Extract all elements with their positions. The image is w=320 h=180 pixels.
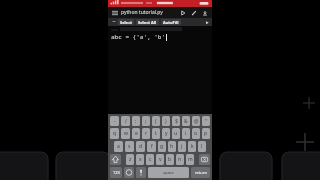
button[interactable]: f xyxy=(147,141,156,152)
staticText: ▸ xyxy=(206,19,209,25)
button[interactable]: : xyxy=(132,116,140,126)
button[interactable]: c xyxy=(146,154,154,165)
staticText: s xyxy=(128,143,131,150)
staticText: e xyxy=(135,130,138,137)
staticText: g xyxy=(160,143,164,150)
button[interactable]: python tutorial.py xyxy=(121,9,179,16)
staticText: o xyxy=(194,130,198,137)
staticText: a xyxy=(117,143,120,150)
button[interactable]: j xyxy=(178,141,186,152)
button[interactable]: u xyxy=(172,128,180,139)
staticText: @ xyxy=(194,118,199,125)
staticText: j xyxy=(181,143,183,150)
button[interactable]: y xyxy=(162,128,170,139)
button[interactable]: t xyxy=(152,128,160,139)
button[interactable]: Select All xyxy=(136,19,159,25)
staticText: return xyxy=(195,170,207,175)
staticText: / xyxy=(125,118,127,125)
staticText: n xyxy=(178,156,182,163)
staticText: python tutorial.py xyxy=(121,9,163,16)
button[interactable]: $ xyxy=(172,116,180,126)
button[interactable]: e xyxy=(132,128,140,139)
button[interactable]: / xyxy=(121,116,130,126)
button[interactable]: a xyxy=(114,141,123,152)
staticText: ( xyxy=(155,118,157,125)
staticText: u xyxy=(174,130,178,137)
button[interactable]: Run script xyxy=(179,9,187,17)
staticText: h xyxy=(170,143,174,150)
button[interactable]: Backspace xyxy=(199,154,210,165)
button[interactable]: " xyxy=(202,116,210,126)
button[interactable]: q xyxy=(110,128,119,139)
staticText: r xyxy=(145,130,148,137)
staticText: AutoFill xyxy=(163,20,179,25)
button[interactable]: k xyxy=(188,141,196,152)
button[interactable]: 123 xyxy=(110,167,122,178)
staticText: k xyxy=(191,143,194,150)
button[interactable]: Shift xyxy=(110,154,121,165)
staticText: w xyxy=(124,130,128,137)
staticText: : xyxy=(135,118,137,125)
staticText: src xyxy=(111,27,119,32)
staticText: x xyxy=(139,156,142,163)
button[interactable]: z xyxy=(126,154,134,165)
staticText: c xyxy=(149,156,152,163)
button[interactable]: ; xyxy=(142,116,150,126)
staticText: t xyxy=(155,130,157,137)
staticText: Select All xyxy=(138,20,157,25)
staticText: ) xyxy=(165,118,167,125)
staticText: " xyxy=(205,118,208,125)
button[interactable]: Save xyxy=(201,9,209,17)
staticText: Select xyxy=(120,20,132,25)
button[interactable]: m xyxy=(186,154,194,165)
staticText: y xyxy=(165,130,168,137)
staticText: 123 xyxy=(113,170,120,175)
button[interactable]: n xyxy=(176,154,184,165)
staticText: abc = {'a', 'b' xyxy=(111,33,166,41)
button[interactable]: i xyxy=(182,128,190,139)
staticText: b xyxy=(168,156,172,163)
staticText: ; xyxy=(145,118,147,125)
staticText: p xyxy=(204,130,208,137)
button[interactable]: r xyxy=(142,128,150,139)
button[interactable]: return xyxy=(191,167,210,178)
staticText: space xyxy=(163,170,174,175)
button[interactable]: v xyxy=(156,154,164,165)
staticText: i xyxy=(185,130,187,137)
button[interactable]: g xyxy=(158,141,166,152)
staticText: v xyxy=(159,156,162,163)
button[interactable]: @ xyxy=(192,116,200,126)
staticText: $ xyxy=(175,118,178,125)
button[interactable]: h xyxy=(168,141,176,152)
button[interactable]: s xyxy=(125,141,134,152)
button[interactable]: ) xyxy=(162,116,170,126)
button[interactable]: l xyxy=(198,141,206,152)
staticText: d xyxy=(139,143,143,150)
button[interactable]: - xyxy=(110,116,119,126)
staticText: q xyxy=(113,130,117,137)
button[interactable]: Select xyxy=(118,19,134,25)
button[interactable]: Voice input xyxy=(136,167,146,178)
button[interactable]: Edit xyxy=(190,9,198,17)
button[interactable]: d xyxy=(136,141,145,152)
button[interactable]: x xyxy=(136,154,144,165)
staticText: m xyxy=(188,156,193,163)
staticText: z xyxy=(129,156,132,163)
button[interactable]: o xyxy=(192,128,200,139)
staticText: & xyxy=(184,118,188,125)
button[interactable]: Open navigation menu xyxy=(111,9,119,17)
button[interactable]: p xyxy=(202,128,210,139)
button[interactable]: AutoFill xyxy=(161,19,181,25)
staticText: f xyxy=(151,143,153,150)
button[interactable]: More options xyxy=(203,18,211,26)
button[interactable]: b xyxy=(166,154,174,165)
staticText: l xyxy=(201,143,203,150)
staticText: - xyxy=(114,118,116,125)
button[interactable]: & xyxy=(182,116,190,126)
button[interactable]: Emoji xyxy=(124,167,134,178)
button[interactable]: space xyxy=(148,167,189,178)
button[interactable]: ( xyxy=(152,116,160,126)
button[interactable]: w xyxy=(121,128,130,139)
